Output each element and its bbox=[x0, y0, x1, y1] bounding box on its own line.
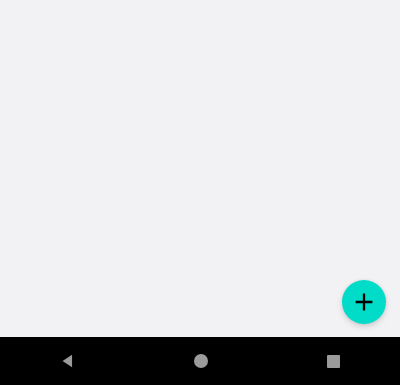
button[interactable]: Add bbox=[342, 280, 386, 324]
button[interactable]: Recent apps bbox=[267, 337, 400, 385]
button[interactable]: Home bbox=[134, 337, 267, 385]
button[interactable]: Back bbox=[0, 337, 134, 385]
